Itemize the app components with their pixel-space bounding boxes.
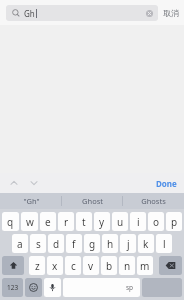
- staticText: 123: [7, 283, 19, 292]
- staticText: q: [7, 215, 14, 229]
- button[interactable]: k: [138, 234, 154, 253]
- button[interactable]: s: [30, 234, 46, 253]
- staticText: h: [107, 237, 114, 251]
- button[interactable]: Clear text: [142, 6, 156, 20]
- button[interactable]: n: [119, 256, 135, 275]
- button[interactable]: v: [83, 256, 99, 275]
- staticText: n: [124, 259, 131, 273]
- button[interactable]: sp: [63, 278, 140, 297]
- staticText: d: [53, 237, 60, 251]
- button[interactable]: Ghost: [62, 193, 123, 209]
- staticText: g: [89, 237, 96, 251]
- staticText: u: [117, 215, 124, 229]
- staticText: o: [153, 215, 160, 229]
- staticText: l: [163, 237, 166, 251]
- staticText: f: [72, 237, 76, 251]
- button[interactable]: Ghosts: [123, 193, 184, 209]
- button[interactable]: m: [137, 256, 153, 275]
- staticText: "Gh": [23, 196, 40, 206]
- staticText: y: [99, 215, 105, 229]
- staticText: r: [64, 215, 69, 229]
- staticText: a: [17, 237, 23, 251]
- button[interactable]: a: [12, 234, 28, 253]
- staticText: 取消: [163, 8, 179, 18]
- button[interactable]: Next field: [26, 175, 42, 191]
- button[interactable]: d: [48, 234, 64, 253]
- button[interactable]: i: [130, 212, 146, 231]
- staticText: e: [45, 215, 51, 229]
- staticText: j: [127, 237, 130, 251]
- staticText: s: [36, 237, 41, 251]
- staticText: Ghost: [82, 196, 103, 206]
- button[interactable]: Shift: [2, 256, 24, 275]
- button[interactable]: "Gh": [0, 193, 62, 209]
- button[interactable]: Backspace: [159, 256, 182, 275]
- staticText: m: [140, 259, 150, 273]
- staticText: v: [88, 259, 94, 273]
- button[interactable]: f: [66, 234, 82, 253]
- button[interactable]: Emoji: [25, 278, 42, 297]
- button[interactable]: h: [102, 234, 118, 253]
- button[interactable]: Dictation: [44, 278, 61, 297]
- button[interactable]: Gh: [6, 5, 158, 21]
- button[interactable]: u: [112, 212, 128, 231]
- button[interactable]: Done: [149, 173, 184, 193]
- button[interactable]: c: [65, 256, 81, 275]
- button[interactable]: q: [2, 212, 19, 231]
- staticText: p: [171, 215, 178, 229]
- button[interactable]: t: [76, 212, 92, 231]
- staticText: Done: [156, 178, 177, 189]
- button[interactable]: b: [101, 256, 117, 275]
- staticText: z: [35, 259, 40, 273]
- button[interactable]: e: [40, 212, 56, 231]
- button[interactable]: g: [84, 234, 100, 253]
- staticText: x: [52, 259, 58, 273]
- button[interactable]: l: [156, 234, 172, 253]
- button[interactable]: o: [148, 212, 164, 231]
- staticText: sp: [126, 283, 134, 292]
- button[interactable]: y: [94, 212, 110, 231]
- staticText: c: [71, 259, 76, 273]
- button[interactable]: z: [29, 256, 45, 275]
- staticText: Gh: [24, 8, 35, 19]
- button[interactable]: p: [166, 212, 182, 231]
- button[interactable]: x: [47, 256, 63, 275]
- staticText: k: [143, 237, 149, 251]
- button[interactable]: Previous field: [6, 175, 22, 191]
- button[interactable]: w: [21, 212, 38, 231]
- staticText: t: [82, 215, 86, 229]
- staticText: Ghosts: [141, 196, 166, 206]
- staticText: b: [106, 259, 113, 273]
- button[interactable]: 取消: [158, 0, 184, 25]
- button[interactable]: r: [58, 212, 74, 231]
- staticText: i: [137, 215, 140, 229]
- button[interactable]: 123: [2, 278, 23, 297]
- button[interactable]: j: [120, 234, 136, 253]
- staticText: w: [26, 215, 34, 229]
